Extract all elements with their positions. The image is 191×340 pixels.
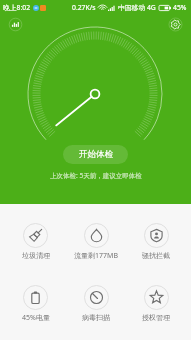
staticText: 骚扰拦截 [142,251,170,260]
staticText: 中国移动 4G [118,3,156,12]
staticText: 垃圾清理 [22,251,50,260]
staticText: 上次体检: 5天前，建议立即体检 [50,171,142,180]
staticText: 开始体检 [79,149,113,160]
button[interactable]: Statistics [5,14,26,35]
staticText: 45% [173,3,187,12]
button[interactable]: 病毒扫描 [66,285,126,322]
staticText: 45%电量 [22,313,50,323]
staticText: 流量剩177MB [74,251,118,261]
staticText: 0.27K/s [72,3,96,12]
button[interactable]: Settings [165,14,186,35]
button[interactable]: 45%电量 [5,285,66,323]
staticText: 授权管理 [142,313,170,322]
button[interactable]: 授权管理 [126,285,186,322]
button[interactable]: 流量剩177MB [66,223,126,261]
staticText: 病毒扫描 [82,313,110,322]
button[interactable]: 垃圾清理 [5,223,66,260]
button[interactable]: 开始体检 [63,145,128,164]
button[interactable]: 骚扰拦截 [126,223,186,260]
staticText: 晚上8:02 [3,3,31,12]
